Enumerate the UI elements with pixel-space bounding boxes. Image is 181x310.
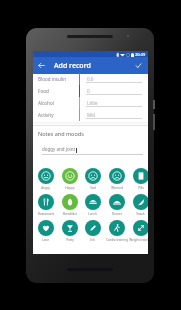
- button[interactable]: Breakfast: [58, 194, 81, 216]
- button[interactable]: Navigate up: [33, 57, 49, 74]
- staticText: Dinner: [112, 212, 122, 216]
- button[interactable]: Ink: [81, 220, 104, 242]
- staticText: Sad: [90, 186, 96, 190]
- button[interactable]: Angry: [34, 168, 57, 190]
- staticText: Food: [38, 88, 49, 94]
- staticText: Party: [66, 238, 74, 242]
- button[interactable]: Alcohol: [33, 97, 148, 109]
- staticText: Ink: [90, 238, 95, 242]
- staticText: Snack: [136, 212, 145, 216]
- staticText: Lunch: [88, 212, 97, 216]
- staticText: 0: [87, 88, 90, 94]
- staticText: Activity: [38, 112, 54, 118]
- button[interactable]: Cardio training: [105, 220, 128, 242]
- staticText: Mid: [87, 112, 96, 118]
- staticText: Cardio training: [106, 238, 128, 242]
- staticText: Breakfast: [63, 212, 77, 216]
- staticText: Worried: [111, 186, 123, 190]
- staticText: Angry: [41, 186, 50, 190]
- button[interactable]: Sad: [81, 168, 104, 190]
- button[interactable]: Weight training: [129, 220, 148, 242]
- staticText: Notes and moods: [38, 130, 84, 137]
- button[interactable]: Save record: [130, 57, 146, 74]
- staticText: doggy and joint: [42, 146, 76, 152]
- button[interactable]: Party: [58, 220, 81, 242]
- button[interactable]: Activity: [33, 109, 148, 121]
- staticText: Pills: [138, 186, 144, 190]
- button[interactable]: Snack: [129, 194, 148, 216]
- staticText: Happy: [65, 186, 75, 190]
- button[interactable]: Lunch: [81, 194, 104, 216]
- button[interactable]: Worried: [105, 168, 128, 190]
- button[interactable]: Restaurant: [34, 194, 57, 216]
- button[interactable]: Love: [34, 220, 57, 242]
- button[interactable]: Pills: [129, 168, 148, 190]
- staticText: Blood insulin: [38, 76, 67, 82]
- button[interactable]: Happy: [58, 168, 81, 190]
- staticText: Restaurant: [38, 212, 54, 216]
- staticText: Alcohol: [38, 100, 54, 106]
- staticText: 0,0: [87, 76, 94, 82]
- button[interactable]: Blood insulin: [33, 73, 148, 85]
- button[interactable]: Food: [33, 85, 148, 97]
- staticText: Love: [42, 238, 49, 242]
- staticText: Add record: [54, 61, 91, 71]
- staticText: Weight training: [129, 238, 148, 242]
- staticText: Little: [87, 100, 98, 106]
- staticText: 20:39: [135, 52, 146, 57]
- button[interactable]: Dinner: [105, 194, 128, 216]
